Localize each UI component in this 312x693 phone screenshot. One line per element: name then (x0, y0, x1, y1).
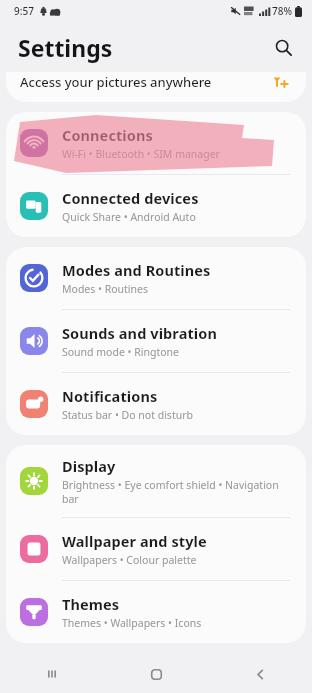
button[interactable]: Connections (6, 112, 306, 174)
button[interactable]: Access your pictures anywhere (6, 72, 306, 102)
staticText: Connections (62, 125, 153, 145)
button[interactable]: Back (208, 655, 312, 693)
staticText: Sound mode • Ringtone (62, 345, 179, 359)
staticText: Status bar • Do not disturb (62, 408, 193, 422)
staticText: Themes (62, 594, 120, 614)
staticText: Display (62, 456, 116, 476)
staticText: Notifications (62, 386, 158, 406)
button[interactable]: Search (268, 32, 298, 62)
staticText: Settings (18, 32, 113, 63)
button[interactable]: Notifications (6, 373, 306, 435)
staticText: Access your pictures anywhere (20, 73, 212, 91)
staticText: Sounds and vibration (62, 323, 217, 343)
button[interactable]: Home (104, 655, 208, 693)
staticText: Wi-Fi • Bluetooth • SIM manager (62, 147, 220, 161)
staticText: Connected devices (62, 188, 199, 208)
staticText: Wallpapers • Colour palette (62, 553, 197, 567)
staticText: Modes • Routines (62, 282, 149, 296)
staticText: 9:57 (14, 4, 34, 18)
button[interactable]: Recent apps (0, 655, 104, 693)
button[interactable]: Connected devices (6, 175, 306, 237)
button[interactable]: Sounds and vibration (6, 310, 306, 372)
staticText: Modes and Routines (62, 260, 211, 280)
staticText: Brightness • Eye comfort shield • Naviga… (62, 478, 292, 506)
staticText: 78% (272, 4, 292, 18)
button[interactable]: Wallpaper and style (6, 518, 306, 580)
staticText: Quick Share • Android Auto (62, 210, 196, 224)
staticText: Wallpaper and style (62, 531, 207, 551)
staticText: Themes • Wallpapers • Icons (62, 616, 202, 630)
button[interactable]: Display (6, 445, 306, 517)
button[interactable]: Modes and Routines (6, 247, 306, 309)
button[interactable]: Themes (6, 581, 306, 643)
